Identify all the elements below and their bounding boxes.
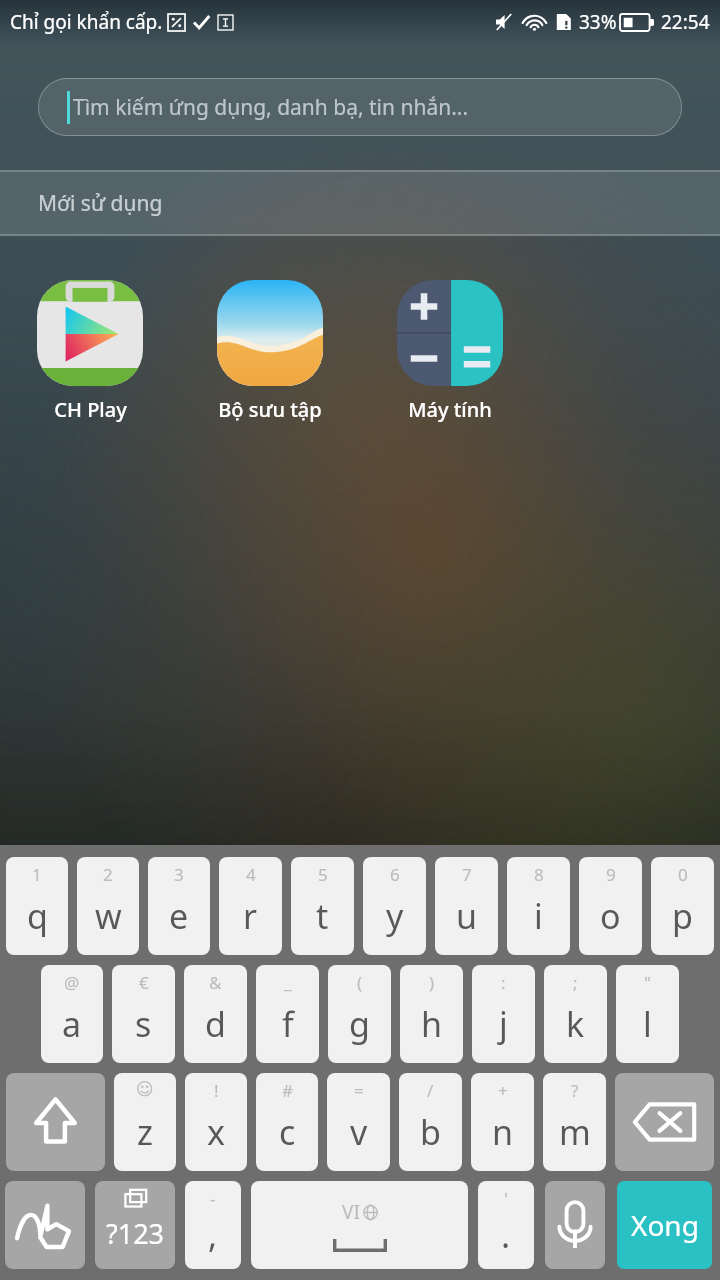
staticText: @ [64,971,80,994]
staticText: 3 [174,863,184,886]
staticText: _ [284,971,292,994]
staticText: ?123 [106,1215,165,1252]
staticText: s [135,1001,152,1047]
staticText: 6 [390,863,400,886]
staticText: , [208,1212,218,1258]
button[interactable]: 2 [77,857,139,955]
staticText: & [209,971,222,994]
staticText: Chỉ gọi khẩn cấp. [10,9,163,35]
staticText: o [600,893,621,939]
staticText: i [534,893,543,939]
staticText: j [499,1001,508,1047]
staticText: ) [429,971,435,994]
staticText: 22:54 [661,9,710,35]
staticText: d [205,1001,226,1047]
button[interactable]: " [616,965,679,1063]
button[interactable]: ( [328,965,391,1063]
button[interactable]: 8 [507,857,570,955]
staticText: Bộ sưu tập [218,396,322,423]
staticText: VI [342,1199,360,1225]
staticText: u [456,893,478,939]
button[interactable]: / [399,1073,462,1171]
staticText: ? [571,1079,579,1102]
staticText: 8 [534,863,544,886]
button[interactable]: 4 [219,857,282,955]
button[interactable]: 6 [363,857,426,955]
staticText: e [169,893,189,939]
button[interactable]: ) [400,965,463,1063]
staticText: c [279,1109,296,1155]
button[interactable]: 1 [6,857,68,955]
button[interactable]: ! [185,1073,247,1171]
staticText: b [420,1109,441,1155]
button[interactable]: 9 [579,857,642,955]
button[interactable]: 3 [148,857,210,955]
staticText: CH Play [54,396,127,423]
button[interactable]: _ [256,965,319,1063]
button[interactable]: Bộ sưu tập [180,280,360,423]
staticText: Mới sử dụng [38,189,163,218]
button[interactable]: - [185,1181,241,1269]
button[interactable]: + [471,1073,534,1171]
staticText: . [501,1212,511,1258]
button[interactable]: ' [478,1181,534,1269]
staticText: 9 [606,863,616,886]
staticText: t [316,893,329,939]
button[interactable]: Shift [6,1073,105,1171]
button[interactable]: CH Play [0,280,180,423]
staticText: 0 [678,863,688,886]
staticText: : [501,971,506,994]
button[interactable]: Voice input [545,1181,605,1269]
staticText: + [498,1079,508,1102]
button[interactable]: 7 [435,857,498,955]
staticText: # [282,1079,293,1102]
staticText: a [62,1001,82,1047]
button[interactable]: € [112,965,175,1063]
staticText: 1 [32,863,42,886]
staticText: v [350,1109,368,1155]
staticText: m [559,1109,591,1155]
staticText: x [207,1109,225,1155]
button[interactable]: Handwriting input [5,1181,85,1269]
staticText: = [354,1079,364,1102]
staticText: r [243,893,258,939]
button[interactable]: ; [544,965,607,1063]
staticText: Tìm kiếm ứng dụng, danh bạ, tin nhắn... [73,93,469,122]
staticText: 2 [103,863,113,886]
button[interactable]: 0 [651,857,714,955]
staticText: ; [573,971,578,994]
staticText: w [95,893,122,939]
button[interactable]: ?123 [95,1181,175,1269]
staticText: q [27,893,48,939]
staticText: 7 [462,863,472,886]
staticText: - [210,1187,216,1210]
staticText: h [421,1001,443,1047]
staticText: p [672,893,693,939]
button[interactable]: Xong [617,1181,712,1269]
staticText: k [566,1001,585,1047]
button[interactable]: Tìm kiếm ứng dụng, danh bạ, tin nhắn... [38,78,682,136]
staticText: ☺ [136,1079,154,1099]
staticText: ( [357,971,363,994]
button[interactable]: ? [543,1073,606,1171]
button[interactable]: & [184,965,247,1063]
staticText: € [139,971,149,994]
staticText: " [644,971,651,994]
staticText: Xong [631,1206,699,1244]
button[interactable]: Space [251,1181,468,1269]
staticText: 4 [246,863,256,886]
button[interactable]: 5 [291,857,354,955]
staticText: g [349,1001,370,1047]
button[interactable]: = [327,1073,390,1171]
staticText: f [282,1001,294,1047]
button[interactable]: Backspace [615,1073,714,1171]
button[interactable]: ☺ [114,1073,176,1171]
staticText: ! [214,1079,219,1102]
staticText: y [386,893,404,939]
button[interactable]: # [256,1073,318,1171]
button[interactable]: @ [41,965,103,1063]
staticText: ' [504,1187,508,1210]
button[interactable]: Máy tính [360,280,540,423]
button[interactable]: : [472,965,535,1063]
staticText: n [492,1109,514,1155]
